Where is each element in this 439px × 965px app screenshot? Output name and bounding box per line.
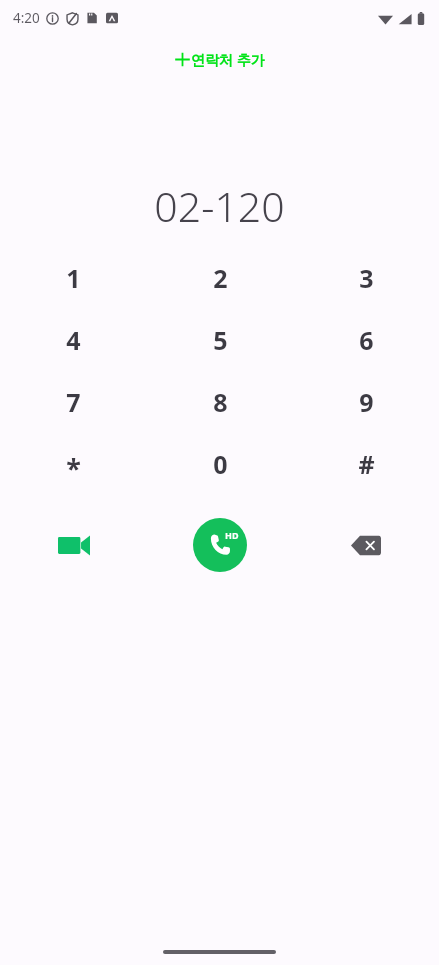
staticText: 3 (359, 261, 374, 295)
staticText: 6 (359, 323, 374, 357)
button[interactable]: 3 (293, 247, 439, 309)
staticText: 4 (66, 323, 81, 357)
button[interactable]: Video call (48, 519, 100, 571)
button[interactable]: 6 (293, 309, 439, 371)
staticText: 연락처 추가 (191, 50, 265, 69)
staticText: 2 (213, 261, 228, 295)
button[interactable]: Backspace (342, 521, 390, 569)
button[interactable]: Call (193, 518, 247, 572)
button[interactable]: * (0, 433, 147, 495)
staticText: HD (225, 529, 239, 541)
staticText: # (358, 447, 375, 481)
button[interactable]: 0 (147, 433, 293, 495)
staticText: 5 (213, 323, 228, 357)
staticText: * (66, 450, 81, 487)
button[interactable]: 2 (147, 247, 293, 309)
staticText: 9 (359, 385, 374, 419)
button[interactable]: 4 (0, 309, 147, 371)
button[interactable]: 9 (293, 371, 439, 433)
button[interactable]: 연락처 추가 (170, 48, 269, 71)
staticText: 1 (66, 261, 81, 295)
staticText: 02-120 (154, 178, 285, 234)
staticText: 0 (213, 447, 228, 481)
staticText: 7 (66, 385, 81, 419)
button[interactable]: 8 (147, 371, 293, 433)
button[interactable]: 7 (0, 371, 147, 433)
staticText: 4:20 (13, 9, 40, 27)
button[interactable]: 5 (147, 309, 293, 371)
button[interactable]: 1 (0, 247, 147, 309)
staticText: 8 (213, 385, 228, 419)
button[interactable]: # (293, 433, 439, 495)
